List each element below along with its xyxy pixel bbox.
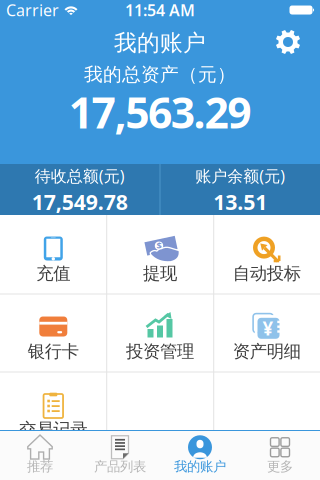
button[interactable]: 银行卡 <box>0 293 106 371</box>
button[interactable]: ¥ <box>214 293 320 371</box>
staticText: 银行卡 <box>28 341 79 362</box>
button[interactable]: 投资管理 <box>107 293 213 371</box>
staticText: $ <box>156 239 161 252</box>
button[interactable]: 产品列表 <box>80 431 160 480</box>
staticText: 17,563.29 <box>69 84 251 140</box>
button[interactable]: $ <box>107 215 213 293</box>
staticText: 更多 <box>267 458 293 475</box>
staticText: 我的总资产（元） <box>84 63 236 86</box>
staticText: 投资管理 <box>126 341 194 362</box>
staticText: 资产明细 <box>233 341 301 362</box>
button[interactable]: 自动投标 <box>214 215 320 293</box>
staticText: 待收总额(元) <box>35 165 125 186</box>
staticText: Carrier <box>6 0 59 21</box>
staticText: 充值 <box>36 263 70 284</box>
staticText: 我的账户 <box>114 29 206 57</box>
staticText: ¥ <box>262 316 273 341</box>
button[interactable]: 推荐 <box>0 431 80 480</box>
button[interactable]: 充值 <box>0 215 106 293</box>
staticText: 我的账户 <box>174 458 226 475</box>
staticText: 自动投标 <box>233 263 301 284</box>
staticText: 产品列表 <box>94 458 146 475</box>
staticText: 账户余额(元) <box>195 165 285 186</box>
button[interactable]: Settings <box>275 29 301 55</box>
staticText: 交易记录 <box>19 419 87 440</box>
staticText: 11:54 AM <box>125 0 195 21</box>
staticText: 17,549.78 <box>32 187 128 216</box>
staticText: 提现 <box>143 263 177 284</box>
staticText: 13.51 <box>213 187 267 216</box>
button[interactable]: 交易记录 <box>0 371 106 449</box>
button[interactable]: 更多 <box>240 431 320 480</box>
button[interactable]: 我的账户 <box>160 431 240 480</box>
staticText: 推荐 <box>27 458 53 475</box>
